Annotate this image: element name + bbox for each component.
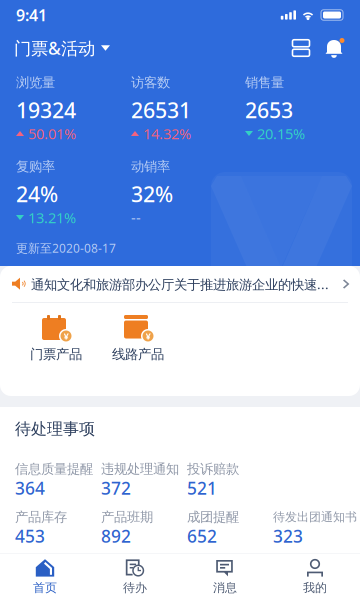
- staticText: 我的: [303, 580, 327, 595]
- staticText: ¥: [63, 330, 68, 342]
- staticText: 待办: [123, 580, 147, 595]
- button[interactable]: 通知文化和旅游部办公厅关于推进旅游企业的快速发展计划…: [0, 266, 360, 302]
- button[interactable]: 我的: [270, 553, 360, 600]
- staticText: 待处理事项: [15, 419, 95, 439]
- staticText: 信息质量提醒: [15, 461, 93, 477]
- staticText: 产品班期: [101, 509, 153, 525]
- button[interactable]: 消息: [180, 553, 270, 600]
- staticText: 线路产品: [112, 346, 164, 362]
- button[interactable]: 首页: [0, 553, 90, 600]
- button[interactable]: 待办: [90, 553, 180, 600]
- staticText: 14.32%: [143, 124, 191, 143]
- button[interactable]: 产品班期: [101, 510, 187, 545]
- button[interactable]: 投诉赔款: [187, 462, 273, 497]
- staticText: 32%: [131, 180, 173, 208]
- staticText: 投诉赔款: [187, 461, 239, 477]
- staticText: 通知文化和旅游部办公厅关于推进旅游企业的快速发展计划…: [31, 275, 333, 293]
- button[interactable]: 违规处理通知: [101, 462, 187, 497]
- staticText: 销售量: [245, 74, 284, 91]
- staticText: 26531: [131, 96, 191, 124]
- button[interactable]: 待发出团通知书: [273, 510, 360, 545]
- staticText: 9:41: [16, 4, 47, 26]
- button[interactable]: Notifications: [318, 30, 350, 66]
- staticText: 323: [273, 524, 303, 547]
- button[interactable]: 产品库存: [15, 510, 101, 545]
- staticText: 复购率: [16, 158, 55, 175]
- button[interactable]: ¥: [97, 314, 179, 362]
- staticText: 453: [15, 524, 45, 547]
- button[interactable]: Split view: [284, 30, 318, 66]
- staticText: ¥: [145, 330, 150, 342]
- staticText: 待发出团通知书: [273, 510, 357, 524]
- staticText: 访客数: [131, 74, 170, 91]
- staticText: --: [131, 208, 141, 227]
- staticText: 浏览量: [16, 74, 55, 91]
- staticText: 892: [101, 524, 131, 547]
- button[interactable]: ¥: [15, 314, 97, 362]
- staticText: 门票&活动: [14, 36, 95, 59]
- staticText: 24%: [16, 180, 58, 208]
- staticText: 20.15%: [257, 124, 305, 143]
- button[interactable]: 门票&活动: [14, 30, 110, 66]
- staticText: 动销率: [131, 158, 170, 175]
- staticText: 2653: [245, 96, 293, 124]
- staticText: 更新至2020-08-17: [16, 240, 116, 256]
- button[interactable]: 成团提醒: [187, 510, 273, 545]
- staticText: 消息: [213, 580, 237, 595]
- staticText: 652: [187, 524, 217, 547]
- staticText: 364: [15, 476, 45, 499]
- staticText: 违规处理通知: [101, 461, 179, 477]
- staticText: 产品库存: [15, 509, 67, 525]
- staticText: 19324: [16, 96, 76, 124]
- staticText: 门票产品: [30, 346, 82, 362]
- button[interactable]: 信息质量提醒: [15, 462, 101, 497]
- staticText: 372: [101, 476, 131, 499]
- staticText: 首页: [33, 580, 57, 595]
- staticText: 成团提醒: [187, 509, 239, 525]
- staticText: 50.01%: [28, 124, 76, 143]
- staticText: 13.21%: [28, 208, 76, 227]
- staticText: 521: [187, 476, 217, 499]
